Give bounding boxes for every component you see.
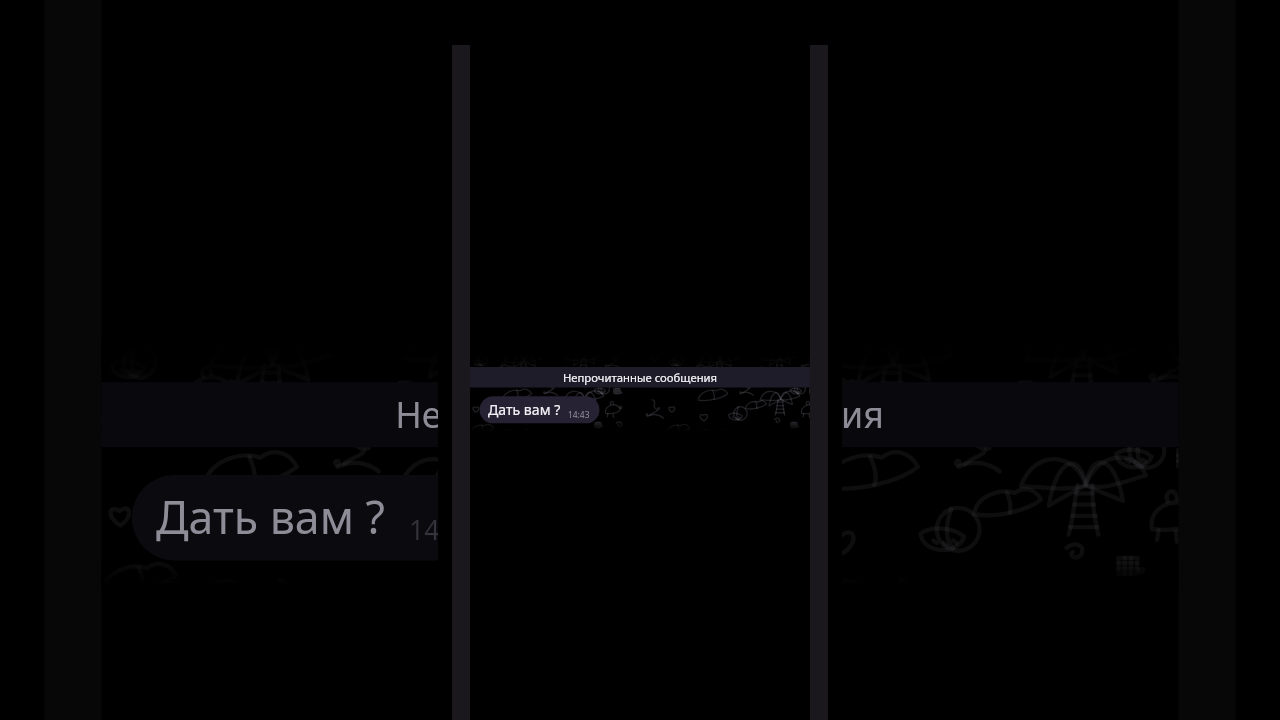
button[interactable]: Play video <box>438 0 842 720</box>
staticText: 14:43 <box>409 512 478 548</box>
staticText: Непрочитанные сообщения <box>101 390 1178 441</box>
staticText: 14:43 <box>568 409 590 420</box>
button[interactable]: Дать вам ? <box>132 472 512 558</box>
button[interactable]: Дать вам ? <box>480 396 600 423</box>
staticText: Дать вам ? <box>156 486 385 547</box>
staticText: Дать вам ? <box>488 400 561 419</box>
button[interactable]: Unread messages divider <box>470 367 810 388</box>
staticText: Непрочитанные сообщения <box>470 370 810 386</box>
button[interactable]: Unread messages divider <box>101 379 1178 444</box>
